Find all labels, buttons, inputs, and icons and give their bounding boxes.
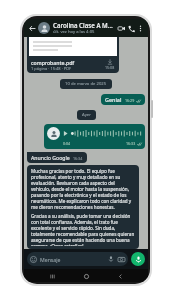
button[interactable]: Contact photo (38, 22, 50, 34)
staticText: 1 página · 15:48 · PDF (31, 66, 72, 71)
button[interactable]: Anuncio Google (27, 152, 87, 163)
button[interactable]: Record voice message (131, 252, 145, 266)
button[interactable]: Mensaje (27, 252, 128, 266)
staticText: Gracias a su análisis, pude tomar una de… (31, 213, 135, 246)
button[interactable]: More options (136, 24, 145, 33)
staticText: Mensaje (40, 256, 61, 263)
staticText: Muchas gracias por todo. El equipo fue p… (31, 168, 135, 210)
staticText: 0:04 (63, 141, 71, 146)
button[interactable]: Camera (117, 255, 125, 263)
button[interactable]: Back (27, 23, 37, 33)
button[interactable]: Carolina Clase A Mad… (53, 21, 114, 35)
staticText: Anuncio Google (31, 154, 70, 161)
button[interactable]: Call (126, 23, 136, 33)
button[interactable]: Recents (46, 270, 58, 282)
staticText: 16:29 (125, 98, 135, 103)
staticText: 16:33 (126, 141, 136, 146)
staticText: Genial (105, 96, 122, 103)
button[interactable]: Home (80, 270, 92, 282)
button[interactable]: Attach (107, 255, 115, 263)
staticText: 10 de marzo de 2025 (65, 81, 107, 87)
staticText: últ. vez hoy a las 4:05 (53, 29, 95, 35)
button[interactable]: Video call (116, 23, 126, 33)
staticText: Ayer (82, 112, 91, 118)
staticText: 16:34 (73, 156, 83, 161)
button[interactable]: Voice message (44, 124, 145, 149)
staticText: comprobante.pdf (31, 59, 75, 66)
button[interactable]: Genial (101, 94, 145, 105)
staticText: Carolina Clase A Mad… (53, 21, 114, 29)
button[interactable]: comprobante.pdf (27, 37, 119, 73)
button[interactable]: Muchas gracias por todo. El equipo fue p… (27, 165, 139, 249)
staticText: 15:08 (105, 65, 115, 70)
button[interactable]: Back (114, 270, 126, 282)
